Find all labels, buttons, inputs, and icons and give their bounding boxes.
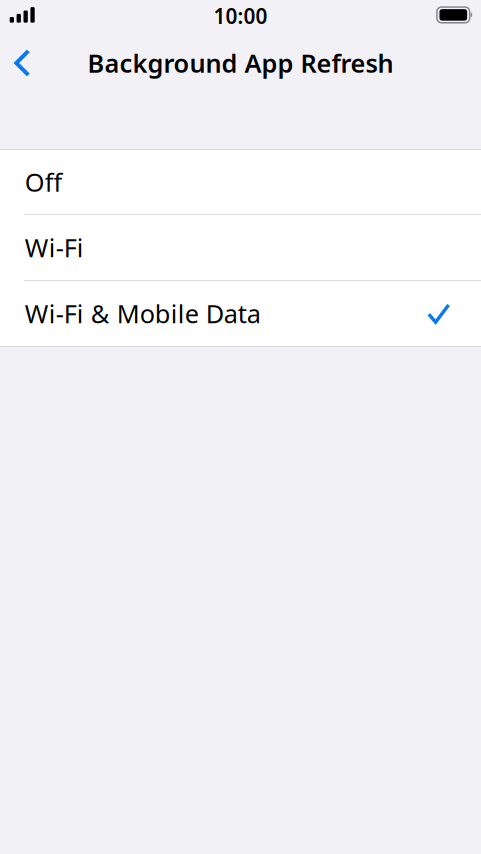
- button[interactable]: Back: [0, 41, 46, 85]
- staticText: 10:00: [213, 2, 267, 30]
- button[interactable]: Selected: [0, 281, 481, 346]
- staticText: Background App Refresh: [87, 46, 393, 80]
- button[interactable]: Not selected: [0, 215, 481, 280]
- staticText: Off: [25, 165, 62, 199]
- staticText: Wi-Fi & Mobile Data: [25, 297, 261, 330]
- button[interactable]: Not selected: [0, 150, 481, 214]
- staticText: Wi-Fi: [25, 231, 84, 264]
